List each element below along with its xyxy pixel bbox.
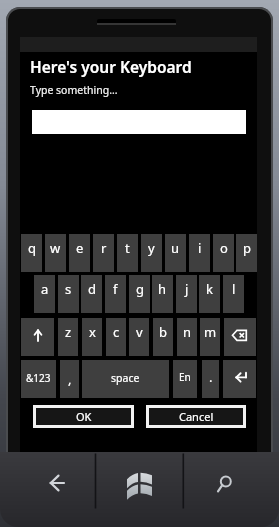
button[interactable]: j bbox=[176, 275, 197, 313]
button[interactable]: l bbox=[223, 275, 244, 313]
staticText: r bbox=[101, 239, 107, 257]
staticText: g bbox=[136, 280, 144, 298]
staticText: m bbox=[204, 323, 217, 341]
button[interactable]: o bbox=[213, 234, 234, 272]
button[interactable]: v bbox=[129, 318, 149, 356]
staticText: u bbox=[171, 239, 180, 257]
button[interactable]: c bbox=[106, 318, 126, 356]
staticText: z bbox=[65, 323, 72, 341]
staticText: h bbox=[158, 280, 167, 298]
button[interactable]: t bbox=[117, 234, 138, 272]
staticText: Here's your Keyboard bbox=[30, 56, 192, 77]
staticText: x bbox=[89, 323, 96, 341]
staticText: e bbox=[76, 239, 84, 257]
button[interactable]: k bbox=[199, 275, 220, 313]
staticText: . bbox=[209, 368, 213, 386]
staticText: , bbox=[68, 370, 72, 388]
staticText: w bbox=[50, 239, 61, 257]
button[interactable]: w bbox=[45, 234, 66, 272]
staticText: v bbox=[136, 323, 143, 341]
staticText: d bbox=[88, 280, 96, 298]
button[interactable]: space bbox=[82, 360, 169, 398]
button[interactable] bbox=[224, 318, 256, 356]
button[interactable]: g bbox=[129, 275, 150, 313]
button[interactable] bbox=[21, 318, 54, 356]
button[interactable]: d bbox=[81, 275, 102, 313]
staticText: q bbox=[28, 239, 36, 257]
button[interactable]: p bbox=[236, 234, 257, 272]
button[interactable] bbox=[96, 454, 183, 509]
button[interactable]: , bbox=[60, 360, 79, 398]
button[interactable]: m bbox=[200, 318, 220, 356]
button[interactable]: u bbox=[165, 234, 186, 272]
button[interactable]: y bbox=[141, 234, 162, 272]
button[interactable]: f bbox=[105, 275, 126, 313]
button[interactable]: Cancel bbox=[146, 405, 246, 428]
staticText: space bbox=[111, 371, 140, 385]
staticText: b bbox=[159, 323, 167, 341]
staticText: s bbox=[65, 280, 72, 298]
staticText: t bbox=[125, 239, 130, 257]
button[interactable]: h bbox=[152, 275, 173, 313]
button[interactable]: i bbox=[189, 234, 210, 272]
button[interactable]: . bbox=[202, 360, 219, 398]
staticText: En bbox=[179, 370, 191, 384]
staticText: o bbox=[220, 239, 228, 257]
staticText: n bbox=[183, 323, 192, 341]
staticText: &123 bbox=[26, 371, 51, 385]
staticText: f bbox=[113, 280, 118, 298]
button[interactable]: a bbox=[34, 275, 55, 313]
button[interactable]: &123 bbox=[21, 360, 56, 398]
button[interactable]: r bbox=[93, 234, 114, 272]
button[interactable] bbox=[184, 454, 272, 509]
staticText: i bbox=[198, 239, 202, 257]
button[interactable]: b bbox=[153, 318, 173, 356]
button[interactable]: OK bbox=[33, 405, 134, 428]
staticText: Type something... bbox=[30, 83, 118, 97]
button[interactable]: En bbox=[173, 360, 197, 398]
button[interactable]: e bbox=[69, 234, 90, 272]
button[interactable]: s bbox=[58, 275, 79, 313]
staticText: Cancel bbox=[179, 409, 214, 424]
button[interactable]: z bbox=[58, 318, 78, 356]
staticText: a bbox=[41, 280, 49, 298]
staticText: l bbox=[232, 280, 236, 298]
button[interactable] bbox=[8, 454, 95, 509]
button[interactable]: q bbox=[21, 234, 42, 272]
button[interactable] bbox=[223, 360, 256, 398]
staticText: c bbox=[113, 323, 120, 341]
staticText: p bbox=[243, 239, 251, 257]
staticText: j bbox=[185, 280, 189, 298]
staticText: OK bbox=[76, 409, 92, 424]
staticText: y bbox=[148, 239, 155, 257]
button[interactable]: n bbox=[177, 318, 197, 356]
button[interactable]: x bbox=[82, 318, 102, 356]
staticText: k bbox=[206, 280, 213, 298]
